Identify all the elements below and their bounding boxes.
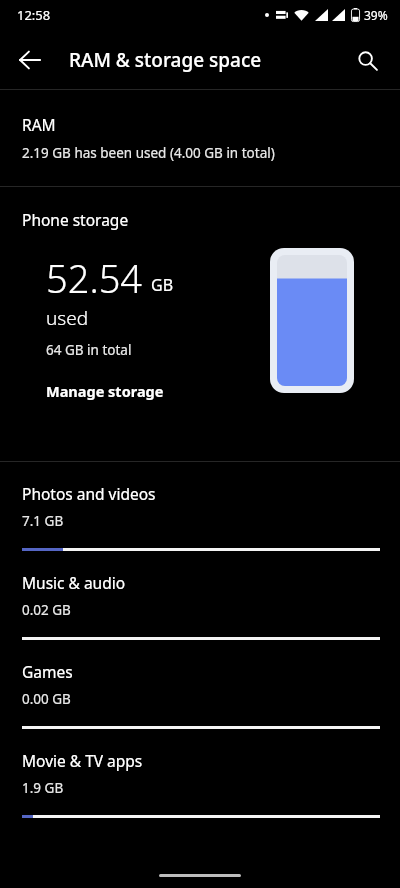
staticText: 1.9 GB (22, 779, 64, 797)
staticText: Phone storage (22, 209, 129, 230)
staticText: 64 GB in total (46, 341, 132, 359)
staticText: Movie & TV apps (22, 750, 143, 771)
staticText: 39% (364, 7, 388, 23)
button[interactable]: Back (6, 36, 54, 84)
button[interactable]: Games (0, 640, 400, 729)
staticText: RAM & storage space (69, 47, 262, 73)
staticText: used (46, 305, 89, 331)
button[interactable]: Photos and videos (0, 462, 400, 551)
button[interactable]: RAM (0, 90, 400, 186)
staticText: 2.19 GB has been used (4.00 GB in total) (22, 144, 275, 162)
staticText: 7.1 GB (22, 512, 64, 530)
staticText: Manage storage (46, 381, 164, 401)
staticText: 12:58 (17, 6, 51, 24)
button[interactable]: Music & audio (0, 551, 400, 640)
button[interactable]: Movie & TV apps (0, 729, 400, 818)
staticText: 52.54 (46, 252, 143, 304)
staticText: GB (151, 274, 174, 296)
button[interactable]: Search (343, 36, 391, 84)
staticText: 0.00 GB (22, 690, 71, 708)
staticText: Music & audio (22, 572, 126, 593)
staticText: Games (22, 661, 73, 682)
staticText: 0.02 GB (22, 601, 71, 619)
button[interactable]: Manage storage (46, 381, 164, 401)
staticText: Photos and videos (22, 483, 156, 504)
staticText: RAM (22, 114, 56, 135)
